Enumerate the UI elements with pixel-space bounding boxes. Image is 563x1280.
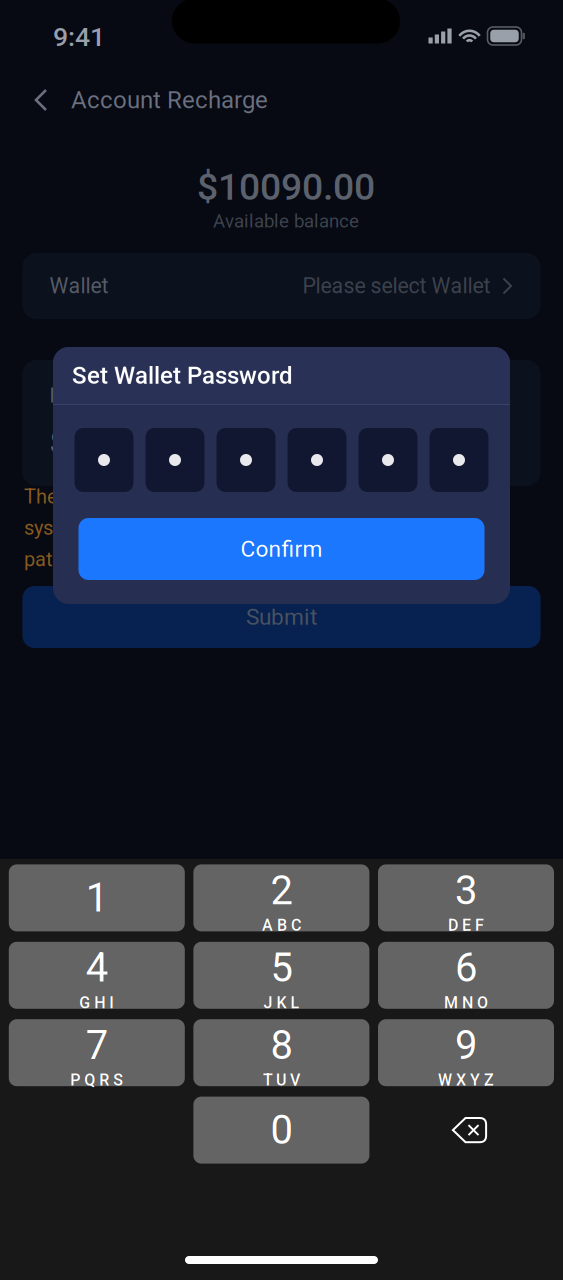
button[interactable]: Back: [15, 74, 67, 126]
staticText: 4: [86, 944, 108, 991]
staticText: 7: [86, 1022, 108, 1069]
staticText: 6: [455, 944, 477, 991]
staticText: J K L: [263, 993, 299, 1012]
staticText: $10090.00: [197, 165, 375, 209]
staticText: M N O: [444, 993, 488, 1012]
staticText: 1: [86, 874, 108, 921]
button[interactable]: 4: [9, 942, 185, 1009]
staticText: Recharge amount: [49, 384, 207, 407]
button[interactable]: 8: [193, 1019, 369, 1086]
staticText: 0: [270, 1107, 292, 1154]
staticText: 9: [455, 1022, 477, 1069]
staticText: 8: [270, 1022, 292, 1069]
staticText: 2: [270, 867, 292, 914]
staticText: system exchange rate, after transfer ple…: [24, 516, 454, 540]
button[interactable]: Confirm: [78, 518, 484, 580]
button[interactable]: Delete: [378, 1097, 554, 1164]
staticText: $: [49, 423, 67, 461]
staticText: 9:41: [53, 21, 105, 53]
staticText: patiently for confirmation.: [24, 548, 254, 571]
staticText: P Q R S: [70, 1071, 123, 1090]
staticText: G H I: [79, 993, 114, 1012]
button[interactable]: 7: [9, 1019, 185, 1086]
staticText: Account Recharge: [71, 86, 268, 114]
button[interactable]: 9: [378, 1019, 554, 1086]
staticText: W X Y Z: [438, 1071, 494, 1090]
button[interactable]: Submit: [22, 586, 540, 648]
staticText: D E F: [448, 916, 484, 935]
staticText: 3: [455, 867, 477, 914]
staticText: Confirm: [240, 536, 322, 562]
staticText: Please select Wallet: [302, 273, 490, 298]
staticText: 5: [270, 944, 292, 991]
button[interactable]: 6: [378, 942, 554, 1009]
staticText: Available balance: [213, 210, 359, 232]
staticText: T U V: [263, 1071, 300, 1090]
button[interactable]: 0: [193, 1097, 369, 1164]
staticText: The recharge amount is credited based on…: [24, 485, 434, 508]
button[interactable]: Wallet: [22, 253, 540, 319]
staticText: Submit: [246, 604, 317, 630]
button[interactable]: 2: [193, 864, 369, 931]
staticText: Wallet: [49, 273, 108, 298]
button[interactable]: 5: [193, 942, 369, 1009]
button[interactable]: 3: [378, 864, 554, 931]
staticText: A B C: [262, 916, 301, 935]
button[interactable]: 1: [9, 864, 185, 931]
staticText: Set Wallet Password: [72, 361, 293, 389]
